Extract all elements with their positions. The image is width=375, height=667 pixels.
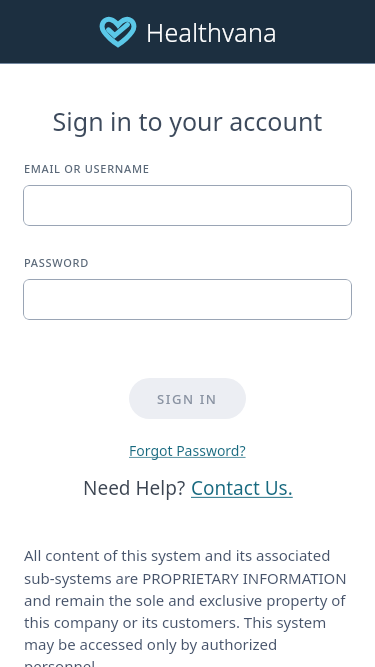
- button[interactable]: Contact Us.: [191, 475, 293, 501]
- staticText: PASSWORD: [24, 255, 89, 270]
- staticText: Sign in to your account: [0, 104, 375, 138]
- button[interactable]: Forgot Password?: [123, 439, 252, 462]
- staticText: Need Help?: [83, 475, 191, 501]
- staticText: SIGN IN: [157, 390, 218, 408]
- staticText: EMAIL OR USERNAME: [24, 161, 150, 176]
- button[interactable]: Password input: [23, 279, 352, 320]
- other: Healthvana logo: [99, 16, 137, 48]
- button[interactable]: Email or username input: [23, 185, 352, 226]
- staticText: All content of this system and its assoc…: [24, 545, 353, 667]
- staticText: Forgot Password?: [129, 441, 246, 460]
- button[interactable]: SIGN IN: [129, 378, 246, 419]
- staticText: Contact Us.: [191, 475, 293, 501]
- staticText: Healthvana: [146, 15, 277, 49]
